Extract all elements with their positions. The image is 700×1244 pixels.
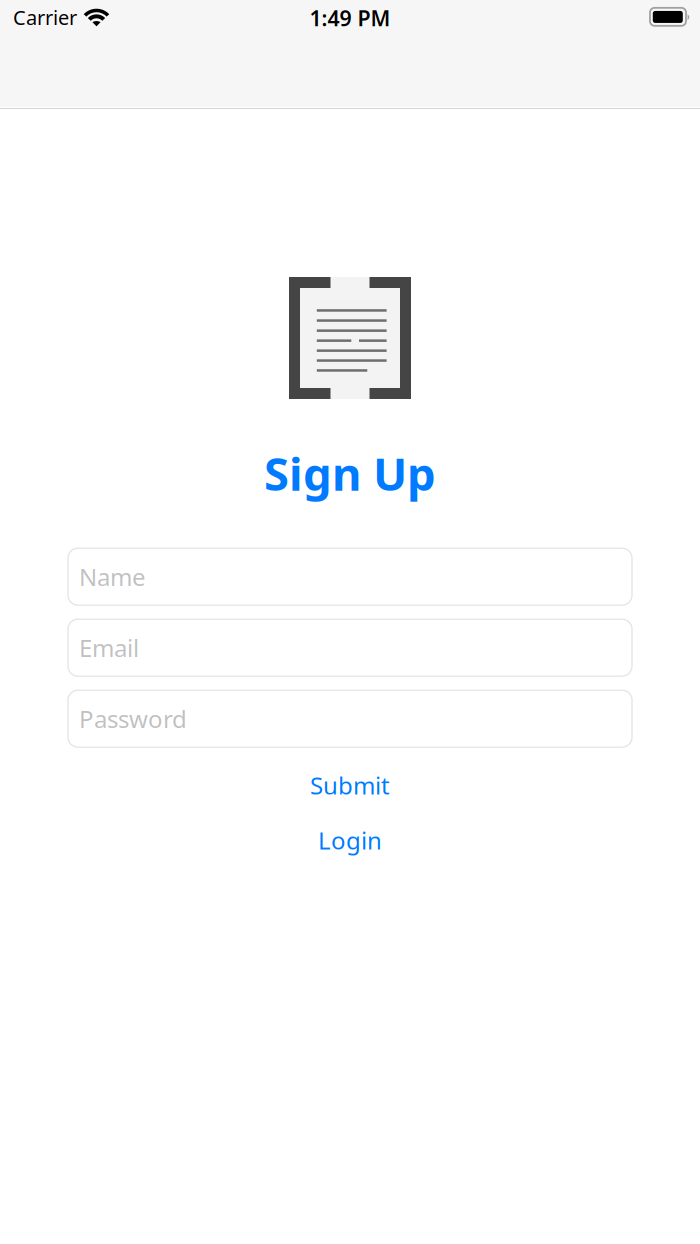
- staticText: Name: [79, 561, 146, 593]
- button[interactable]: Name: [68, 548, 632, 605]
- staticText: Email: [79, 632, 139, 664]
- button[interactable]: Password: [68, 690, 632, 747]
- staticText: 1:49 PM: [309, 4, 390, 32]
- staticText: Login: [318, 824, 382, 856]
- button[interactable]: Email: [68, 619, 632, 676]
- staticText: Sign Up: [264, 443, 436, 503]
- button[interactable]: Submit: [68, 767, 632, 803]
- staticText: Password: [79, 703, 187, 735]
- staticText: Submit: [310, 769, 390, 801]
- staticText: Carrier: [13, 4, 77, 30]
- button[interactable]: Login: [68, 822, 632, 858]
